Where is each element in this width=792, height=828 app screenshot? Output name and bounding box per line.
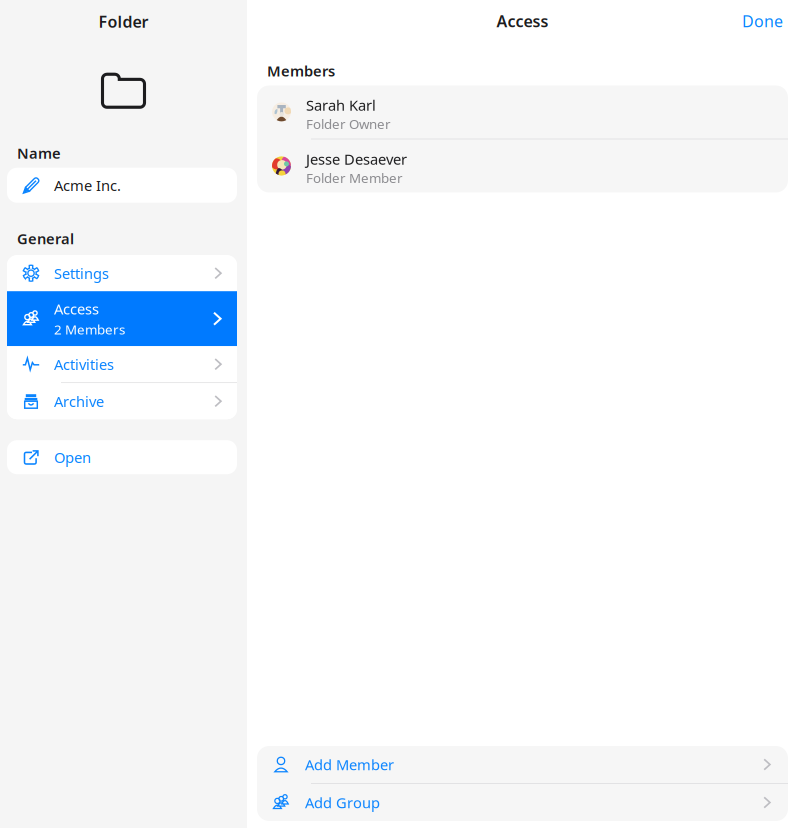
button[interactable]: Jesse Desaever: [257, 139, 788, 192]
staticText: Acme Inc.: [54, 175, 121, 195]
staticText: Folder Member: [306, 169, 403, 187]
staticText: Jesse Desaever: [306, 149, 407, 169]
button[interactable]: Activities: [7, 346, 237, 382]
staticText: Open: [54, 447, 91, 467]
button[interactable]: Open: [7, 440, 237, 474]
staticText: Folder: [98, 11, 148, 32]
button[interactable]: Add Member: [257, 746, 788, 783]
staticText: Access: [496, 10, 548, 32]
staticText: 2 Members: [54, 321, 125, 338]
staticText: Add Member: [305, 755, 394, 774]
button[interactable]: Settings: [7, 255, 237, 291]
staticText: Members: [267, 61, 335, 80]
staticText: Folder Owner: [306, 115, 391, 133]
staticText: Add Group: [305, 793, 380, 812]
staticText: Name: [17, 143, 61, 163]
button[interactable]: Acme Inc.: [7, 168, 237, 203]
button[interactable]: Access: [7, 291, 237, 346]
staticText: Done: [742, 10, 783, 32]
button[interactable]: Done: [733, 1, 792, 41]
staticText: Activities: [54, 354, 114, 374]
staticText: Archive: [54, 391, 104, 411]
staticText: Sarah Karl: [306, 95, 376, 115]
button[interactable]: Add Group: [257, 784, 788, 821]
staticText: General: [17, 229, 74, 248]
staticText: Settings: [54, 263, 109, 283]
button[interactable]: Archive: [7, 383, 237, 419]
staticText: Access: [54, 299, 99, 319]
button[interactable]: Sarah Karl: [257, 85, 788, 138]
